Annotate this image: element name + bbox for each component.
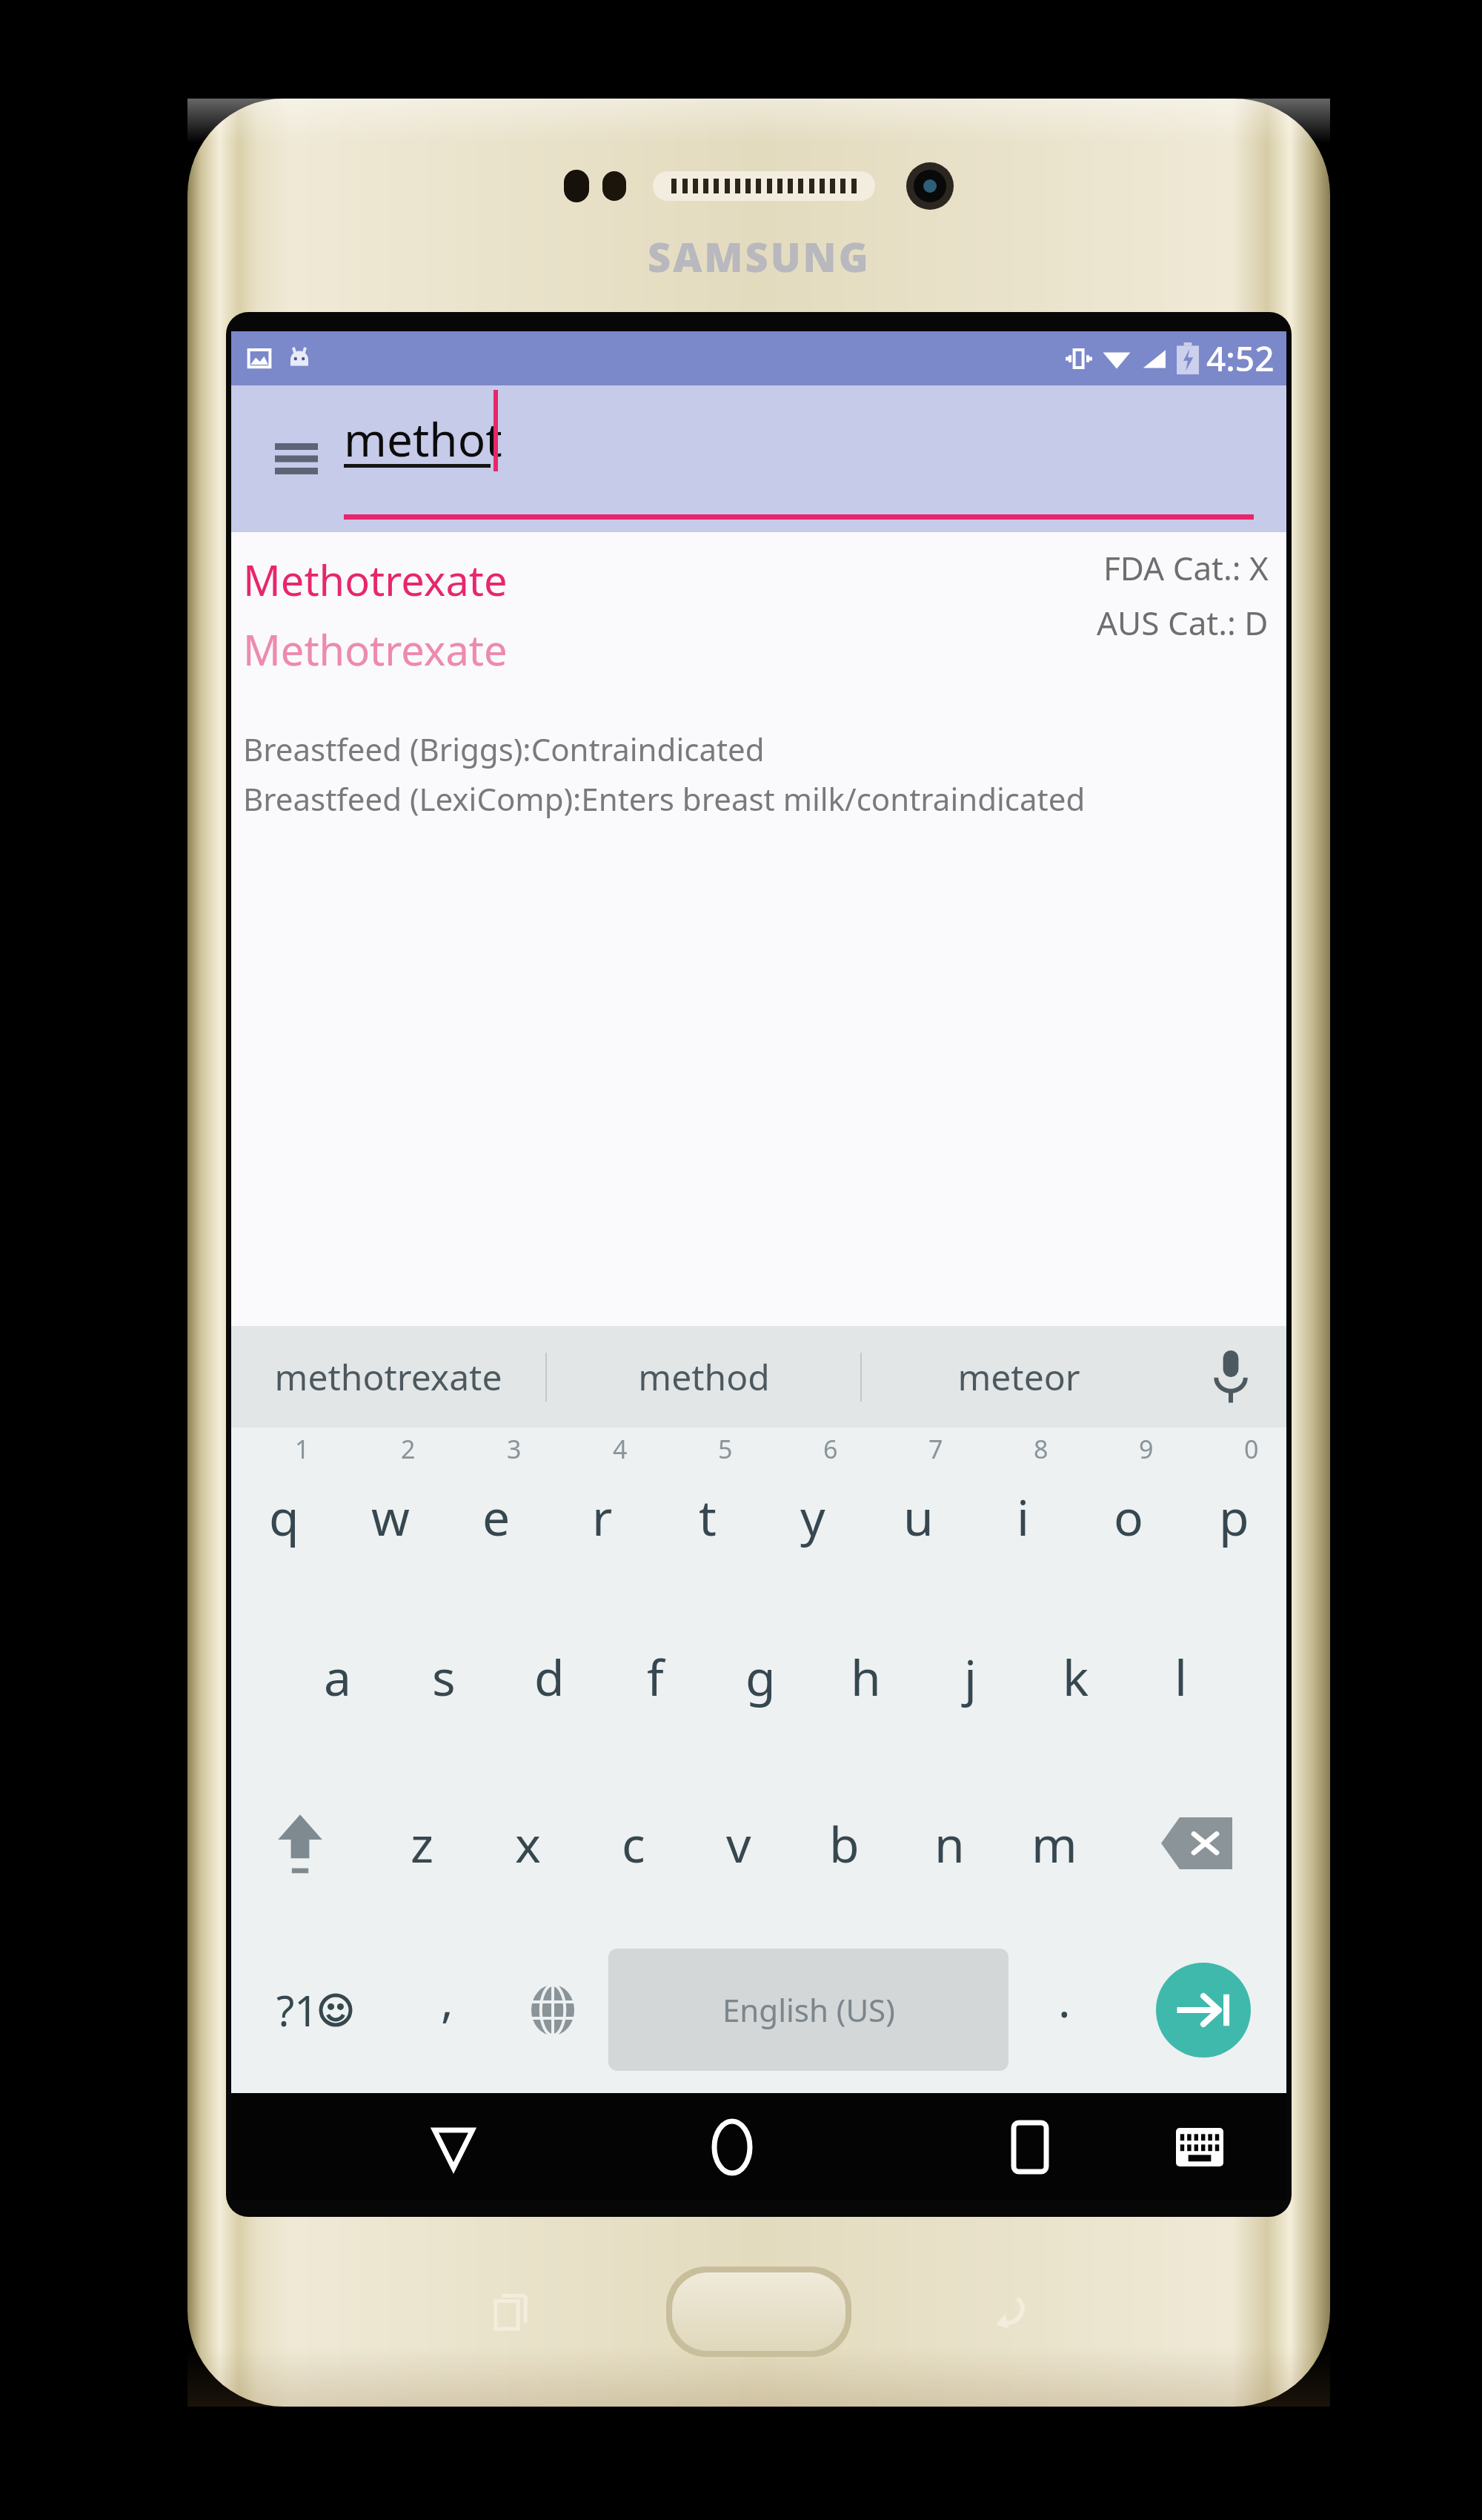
staticText: methotrexate	[274, 1353, 502, 1401]
button[interactable]: z	[369, 1760, 475, 1926]
staticText: ,	[441, 1969, 453, 2031]
button[interactable]: Change keyboard language	[497, 1926, 608, 2093]
button[interactable]: ,	[397, 1926, 497, 2093]
button[interactable]: method	[547, 1326, 860, 1428]
staticText: 4	[613, 1432, 628, 1466]
button[interactable]: 6	[760, 1428, 865, 1594]
staticText: 2	[401, 1432, 416, 1466]
button[interactable]: h	[813, 1594, 918, 1760]
button[interactable]: Recents	[986, 2103, 1074, 2192]
staticText: 9	[1139, 1432, 1154, 1466]
button[interactable]: 8	[971, 1428, 1076, 1594]
staticText: 6	[823, 1432, 838, 1466]
button[interactable]: a	[285, 1594, 391, 1760]
staticText: FDA Cat.: X	[1103, 546, 1269, 590]
button[interactable]: g	[708, 1594, 813, 1760]
staticText: x	[515, 1810, 541, 1877]
staticText: 1	[295, 1432, 310, 1466]
staticText: l	[1174, 1643, 1188, 1710]
staticText: Breastfeed (LexiComp):Enters breast milk…	[243, 777, 1086, 820]
button[interactable]: v	[686, 1760, 791, 1926]
staticText: w	[371, 1483, 410, 1550]
button[interactable]: Methotrexate	[231, 532, 1286, 1326]
button[interactable]: c	[581, 1760, 686, 1926]
staticText: English (US)	[722, 1989, 895, 2031]
staticText: c	[622, 1810, 645, 1877]
button[interactable]: 3	[443, 1428, 549, 1594]
staticText: t	[699, 1483, 717, 1550]
staticText: 7	[928, 1432, 943, 1466]
staticText: s	[432, 1643, 456, 1710]
staticText: r	[592, 1483, 613, 1550]
staticText: SAMSUNG	[648, 229, 871, 284]
staticText: m	[1031, 1810, 1077, 1877]
staticText: b	[829, 1810, 860, 1877]
staticText: method	[638, 1353, 770, 1401]
staticText: 5	[718, 1432, 733, 1466]
staticText: AUS Cat.: D	[1097, 600, 1269, 645]
staticText: Methotrexate	[243, 551, 508, 608]
staticText: v	[726, 1810, 751, 1877]
button[interactable]: 5	[655, 1428, 760, 1594]
staticText: q	[269, 1483, 299, 1550]
staticText: p	[1219, 1483, 1249, 1550]
staticText: 4:52	[1206, 335, 1275, 382]
button[interactable]: j	[918, 1594, 1023, 1760]
button[interactable]: meteor	[862, 1326, 1175, 1428]
button[interactable]: Backspace	[1107, 1760, 1286, 1926]
staticText: d	[534, 1643, 565, 1710]
button[interactable]: Back	[409, 2103, 498, 2192]
button[interactable]: Hide keyboard	[1159, 2106, 1240, 2188]
button[interactable]: 9	[1076, 1428, 1181, 1594]
button[interactable]: 2	[337, 1428, 443, 1594]
staticText: ?1	[276, 1982, 319, 2038]
button[interactable]: l	[1129, 1594, 1234, 1760]
staticText: i	[1017, 1483, 1030, 1550]
button[interactable]: n	[897, 1760, 1002, 1926]
staticText: k	[1063, 1643, 1089, 1710]
staticText: o	[1114, 1483, 1143, 1550]
staticText: .	[1058, 1969, 1071, 2031]
button[interactable]: x	[475, 1760, 581, 1926]
button[interactable]: Home	[688, 2103, 777, 2192]
button[interactable]: methotrexate	[231, 1326, 545, 1428]
button[interactable]: 4	[549, 1428, 655, 1594]
button[interactable]: .	[1009, 1926, 1120, 2093]
staticText: 8	[1034, 1432, 1049, 1466]
button[interactable]: k	[1023, 1594, 1129, 1760]
button[interactable]: b	[791, 1760, 897, 1926]
button[interactable]: 7	[865, 1428, 971, 1594]
button[interactable]: ?1	[231, 1926, 397, 2093]
button[interactable]: Enter	[1120, 1926, 1286, 2093]
staticText: e	[482, 1483, 511, 1550]
staticText: y	[800, 1483, 825, 1550]
staticText: meteor	[957, 1353, 1080, 1401]
staticText: u	[903, 1483, 934, 1550]
staticText: n	[934, 1810, 965, 1877]
button[interactable]: 1	[231, 1428, 337, 1594]
staticText: j	[964, 1643, 977, 1710]
staticText: Methotrexate	[243, 621, 508, 677]
staticText: 0	[1244, 1432, 1259, 1466]
button[interactable]: f	[602, 1594, 708, 1760]
button[interactable]: d	[496, 1594, 602, 1760]
staticText: h	[851, 1643, 881, 1710]
button[interactable]: Voice input	[1175, 1326, 1286, 1428]
staticText: z	[411, 1810, 434, 1877]
button[interactable]: s	[391, 1594, 496, 1760]
staticText: f	[647, 1643, 664, 1710]
button[interactable]: 0	[1181, 1428, 1286, 1594]
button[interactable]: English (US)	[608, 1949, 1009, 2071]
staticText: g	[745, 1643, 776, 1710]
button[interactable]: Open navigation menu	[262, 425, 330, 493]
button[interactable]: m	[1002, 1760, 1107, 1926]
staticText: a	[324, 1643, 352, 1710]
staticText: Breastfeed (Briggs):Contraindicated	[243, 728, 765, 770]
staticText: 3	[507, 1432, 522, 1466]
button[interactable]: Shift	[231, 1760, 369, 1926]
staticText: methot	[344, 408, 502, 470]
